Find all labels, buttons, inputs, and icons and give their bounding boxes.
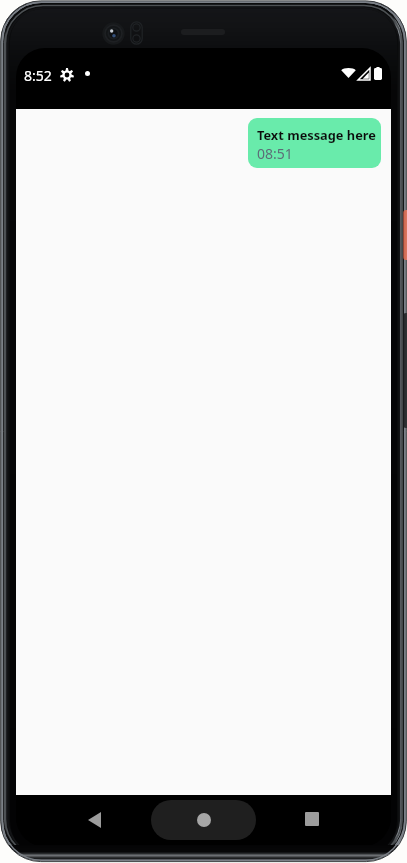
staticText: Text message here [257, 126, 376, 143]
staticText: 08:51 [257, 144, 293, 163]
button[interactable]: Home [151, 800, 256, 840]
button[interactable]: Recent apps [293, 800, 330, 837]
button[interactable]: Back [76, 801, 113, 838]
button[interactable]: Text message here [248, 118, 381, 168]
staticText: 8:52 [24, 66, 52, 85]
